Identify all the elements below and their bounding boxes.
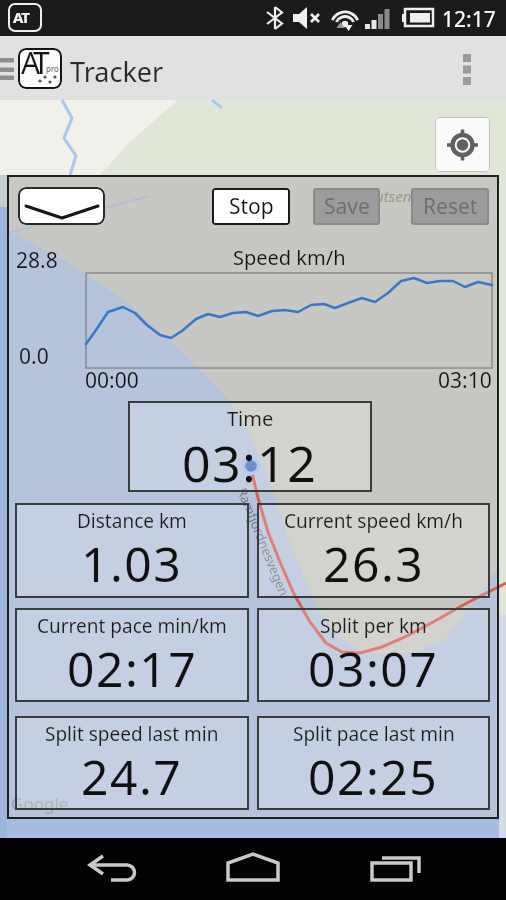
staticText: Split pace last min — [293, 721, 455, 747]
staticText: 03:12 — [182, 429, 318, 489]
staticText: Speed km/h — [233, 244, 346, 271]
staticText: 03:07 — [308, 636, 439, 699]
staticText: 12:17 — [442, 5, 496, 34]
button[interactable]: Split pace last min — [257, 716, 490, 810]
staticText: Rautsenskogen — [358, 186, 459, 206]
staticText: Current speed km/h — [284, 508, 463, 534]
button[interactable]: Save — [313, 188, 380, 225]
button[interactable] — [435, 117, 490, 172]
button[interactable]: Time — [128, 401, 372, 492]
staticText: Save — [324, 192, 370, 221]
button[interactable]: Current speed km/h — [257, 503, 490, 598]
staticText: AT — [21, 48, 45, 83]
staticText: 02:17 — [67, 636, 198, 699]
staticText: 28.8 — [16, 246, 58, 275]
button[interactable] — [18, 187, 105, 225]
button[interactable] — [80, 846, 150, 892]
button[interactable]: Current pace min/km — [15, 608, 249, 702]
staticText: 0.0 — [19, 342, 49, 371]
staticText: Google — [11, 792, 69, 815]
button[interactable]: AT — [18, 48, 62, 89]
staticText: AT — [13, 7, 29, 27]
staticText: Stop — [229, 192, 274, 221]
staticText: Ramfjordnesvegen — [233, 485, 293, 599]
staticText: 24.7 — [81, 744, 183, 807]
staticText: Split speed last min — [45, 721, 219, 747]
button[interactable] — [360, 846, 430, 892]
staticText: Distance km — [77, 508, 187, 534]
button[interactable]: Distance km — [15, 503, 249, 598]
button[interactable]: Reset — [411, 188, 489, 225]
staticText: Current pace min/km — [37, 613, 227, 639]
staticText: Split per km — [320, 613, 427, 639]
staticText: 02:25 — [308, 744, 439, 807]
staticText: Tracker — [70, 53, 164, 90]
staticText: Time — [227, 405, 274, 432]
button[interactable] — [218, 846, 288, 892]
button[interactable] — [450, 44, 486, 92]
button[interactable]: Stop — [212, 188, 290, 225]
staticText: 03:10 — [438, 366, 492, 395]
staticText: Reset — [423, 192, 478, 221]
staticText: 1.03 — [81, 531, 183, 595]
button[interactable]: Split per km — [257, 608, 490, 702]
button[interactable]: Split speed last min — [15, 716, 249, 810]
staticText: 26.3 — [323, 531, 425, 595]
staticText: 00:00 — [85, 366, 139, 395]
staticText: pro — [46, 63, 59, 74]
